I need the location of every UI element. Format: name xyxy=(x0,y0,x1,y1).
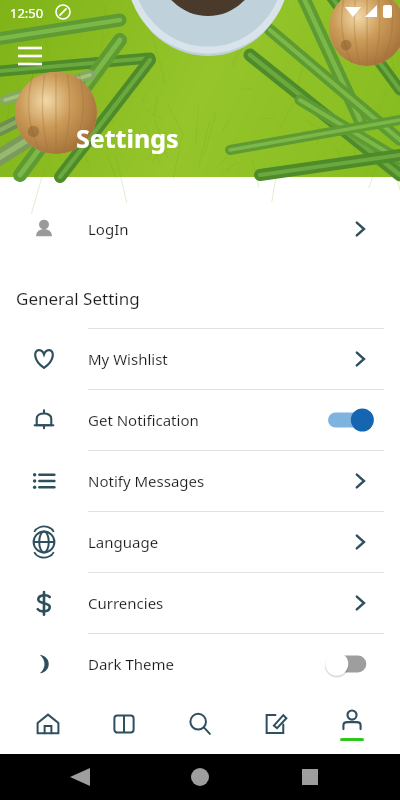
staticText: Get Notification xyxy=(88,410,199,430)
button[interactable]: Compose xyxy=(248,696,304,752)
button[interactable]: Toggle on xyxy=(328,408,372,432)
button[interactable]: Profile xyxy=(324,696,380,752)
button[interactable]: Home xyxy=(20,696,76,752)
staticText: My Wishlist xyxy=(88,349,168,369)
staticText: Dark Theme xyxy=(88,654,175,674)
button[interactable]: Search xyxy=(172,696,228,752)
button[interactable]: Notify Messages xyxy=(0,451,400,511)
staticText: Notify Messages xyxy=(88,471,205,491)
button[interactable]: My Wishlist xyxy=(0,329,400,389)
button[interactable]: Get Notification xyxy=(0,390,400,450)
button[interactable]: Language xyxy=(0,512,400,572)
button[interactable]: Library xyxy=(96,696,152,752)
staticText: Settings xyxy=(76,121,179,155)
staticText: 12:50 xyxy=(10,4,44,22)
button[interactable]: Toggle off xyxy=(328,652,372,676)
staticText: LogIn xyxy=(88,219,129,239)
button[interactable]: Currencies xyxy=(0,573,400,633)
staticText: Currencies xyxy=(88,593,164,613)
staticText: General Setting xyxy=(16,287,140,310)
staticText: Language xyxy=(88,532,159,552)
button[interactable]: LogIn xyxy=(0,201,400,257)
button[interactable]: Dark Theme xyxy=(0,634,400,694)
button[interactable]: Menu xyxy=(12,38,48,74)
